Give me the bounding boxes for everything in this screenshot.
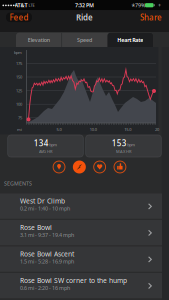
staticText: 150 xyxy=(16,74,22,80)
staticText: SEGMENTS xyxy=(4,180,32,187)
staticText: LTE xyxy=(28,2,34,8)
staticText: Rose Bowl Ascent xyxy=(20,249,74,258)
button[interactable]: Kudos xyxy=(93,160,106,173)
staticText: bpm xyxy=(127,142,135,147)
button[interactable]: Rose Bowl SW corner to the hump xyxy=(0,273,169,299)
staticText: + xyxy=(158,2,161,9)
staticText: 153 xyxy=(112,138,127,148)
staticText: 10.0 xyxy=(90,127,97,132)
staticText: 7:32 PM xyxy=(75,2,94,9)
staticText: Feed xyxy=(9,12,28,23)
button[interactable]: Feed xyxy=(6,13,32,22)
button[interactable]: Analysis xyxy=(73,160,86,173)
staticText: 3.1 mi - 9:37 - 19.4 mph xyxy=(20,231,74,239)
staticText: Elevation xyxy=(28,36,50,43)
button[interactable]: Rose Bowl xyxy=(0,220,169,246)
staticText: MAX HR xyxy=(116,149,131,154)
button[interactable]: Achievements xyxy=(113,160,126,173)
button[interactable]: West Dr Climb xyxy=(0,193,169,220)
button[interactable]: 153 xyxy=(86,135,161,157)
button[interactable]: Map xyxy=(52,160,65,173)
staticText: 75 xyxy=(18,115,22,120)
button[interactable]: Speed xyxy=(62,33,107,47)
button[interactable]: Elevation xyxy=(16,33,62,47)
staticText: 0.6 mi - 2:20 - 16 mph xyxy=(20,284,70,292)
staticText: AT&T xyxy=(14,2,27,9)
staticText: 79% xyxy=(135,2,145,9)
staticText: 5.0 xyxy=(56,127,61,132)
staticText: West Dr Climb xyxy=(20,196,65,205)
staticText: mi xyxy=(17,127,22,132)
staticText: 134 xyxy=(34,138,49,148)
staticText: Share xyxy=(140,12,162,23)
button[interactable]: Heart Rate xyxy=(107,33,153,47)
button[interactable]: 134 xyxy=(8,135,83,157)
staticText: Rose Bowl xyxy=(20,223,52,232)
staticText: bpm xyxy=(14,50,22,55)
staticText: 15.0 xyxy=(124,127,131,132)
staticText: 175 xyxy=(16,61,22,66)
button[interactable]: Rose Bowl Ascent xyxy=(0,246,169,273)
staticText: * xyxy=(131,2,135,10)
staticText: 125 xyxy=(16,88,22,93)
staticText: Ride xyxy=(76,12,93,23)
button[interactable]: Share xyxy=(132,11,162,23)
staticText: Heart Rate xyxy=(117,36,143,43)
staticText: Speed xyxy=(77,36,92,43)
staticText: Rose Bowl SW corner to the hump xyxy=(20,276,127,285)
staticText: 20 xyxy=(155,127,159,132)
staticText: AVG HR xyxy=(39,149,52,154)
staticText: 0.2 mi - 1:40 - 10 mph xyxy=(20,205,70,212)
staticText: 1.5 mi - 5:28 - 16.9 mph xyxy=(20,258,74,265)
staticText: bpm xyxy=(49,142,57,147)
staticText: 100 xyxy=(16,101,22,107)
